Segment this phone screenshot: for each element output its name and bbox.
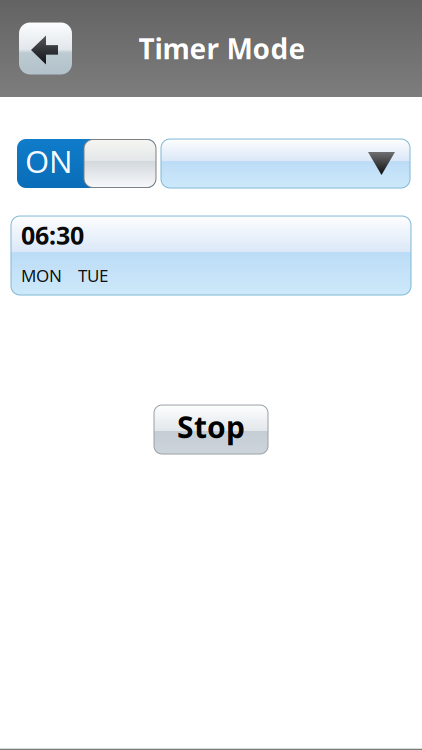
staticText: Timer Mode — [138, 29, 305, 67]
button[interactable]: Select mode — [161, 139, 410, 188]
staticText: TUE — [78, 264, 108, 287]
button[interactable]: On — [17, 139, 156, 188]
button[interactable]: Back — [19, 22, 72, 74]
staticText: MON — [21, 264, 62, 287]
staticText: Stop — [177, 406, 245, 447]
staticText: ON — [25, 140, 73, 182]
button[interactable]: 06:30 — [11, 216, 411, 295]
staticText: 06:30 — [21, 218, 84, 252]
button[interactable]: Stop — [154, 405, 268, 454]
